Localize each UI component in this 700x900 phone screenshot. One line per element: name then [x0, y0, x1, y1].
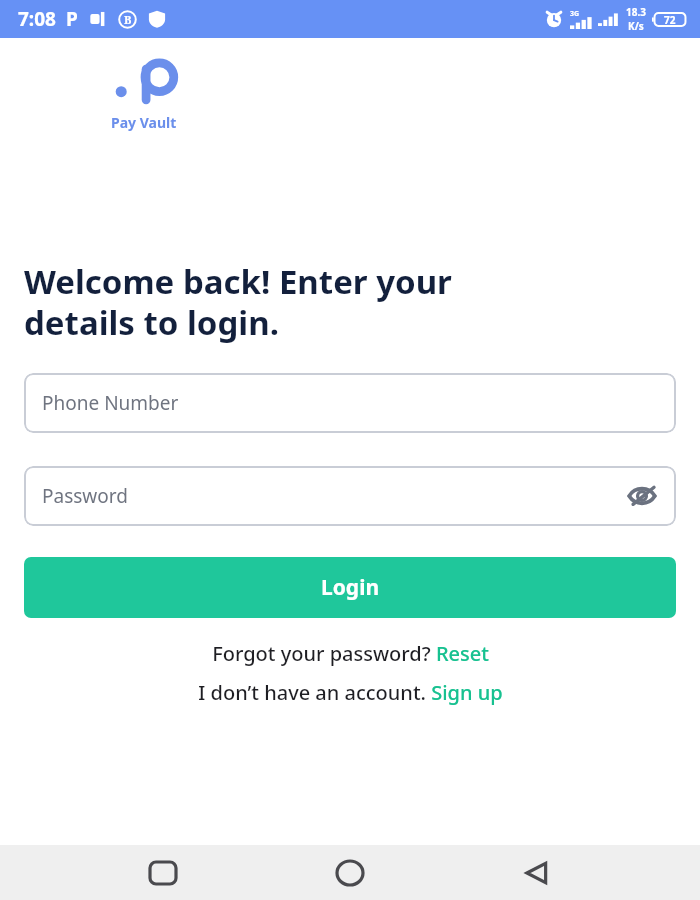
staticText: Login — [321, 573, 380, 602]
staticText: P — [66, 6, 78, 32]
button[interactable]: Back — [513, 849, 561, 897]
staticText: 72 — [664, 13, 676, 27]
staticText: Welcome back! Enter your details to logi… — [24, 259, 452, 345]
button[interactable]: Login — [24, 557, 676, 618]
staticText: I don’t have an account. Sign up — [198, 679, 503, 706]
staticText: K/s — [628, 19, 644, 33]
button[interactable]: I don’t have an account. Sign up — [0, 679, 700, 706]
staticText: 3G — [570, 9, 580, 19]
button[interactable]: Pay Vault logo — [100, 60, 188, 132]
button[interactable]: Recent apps — [139, 849, 187, 897]
button[interactable]: Home — [326, 849, 374, 897]
button[interactable]: Show password — [622, 476, 662, 516]
staticText: Pay Vault — [111, 113, 177, 132]
staticText: 18.3 — [626, 5, 646, 19]
button[interactable]: Phone Number — [24, 373, 676, 433]
staticText: Forgot your password? Reset — [212, 640, 489, 667]
button[interactable]: Forgot your password? Reset — [0, 640, 700, 667]
staticText: 7:08 — [18, 6, 56, 32]
staticText: B — [124, 12, 132, 27]
staticText: Phone Number — [42, 390, 179, 416]
button[interactable]: Password — [24, 466, 676, 526]
staticText: Password — [42, 483, 128, 509]
